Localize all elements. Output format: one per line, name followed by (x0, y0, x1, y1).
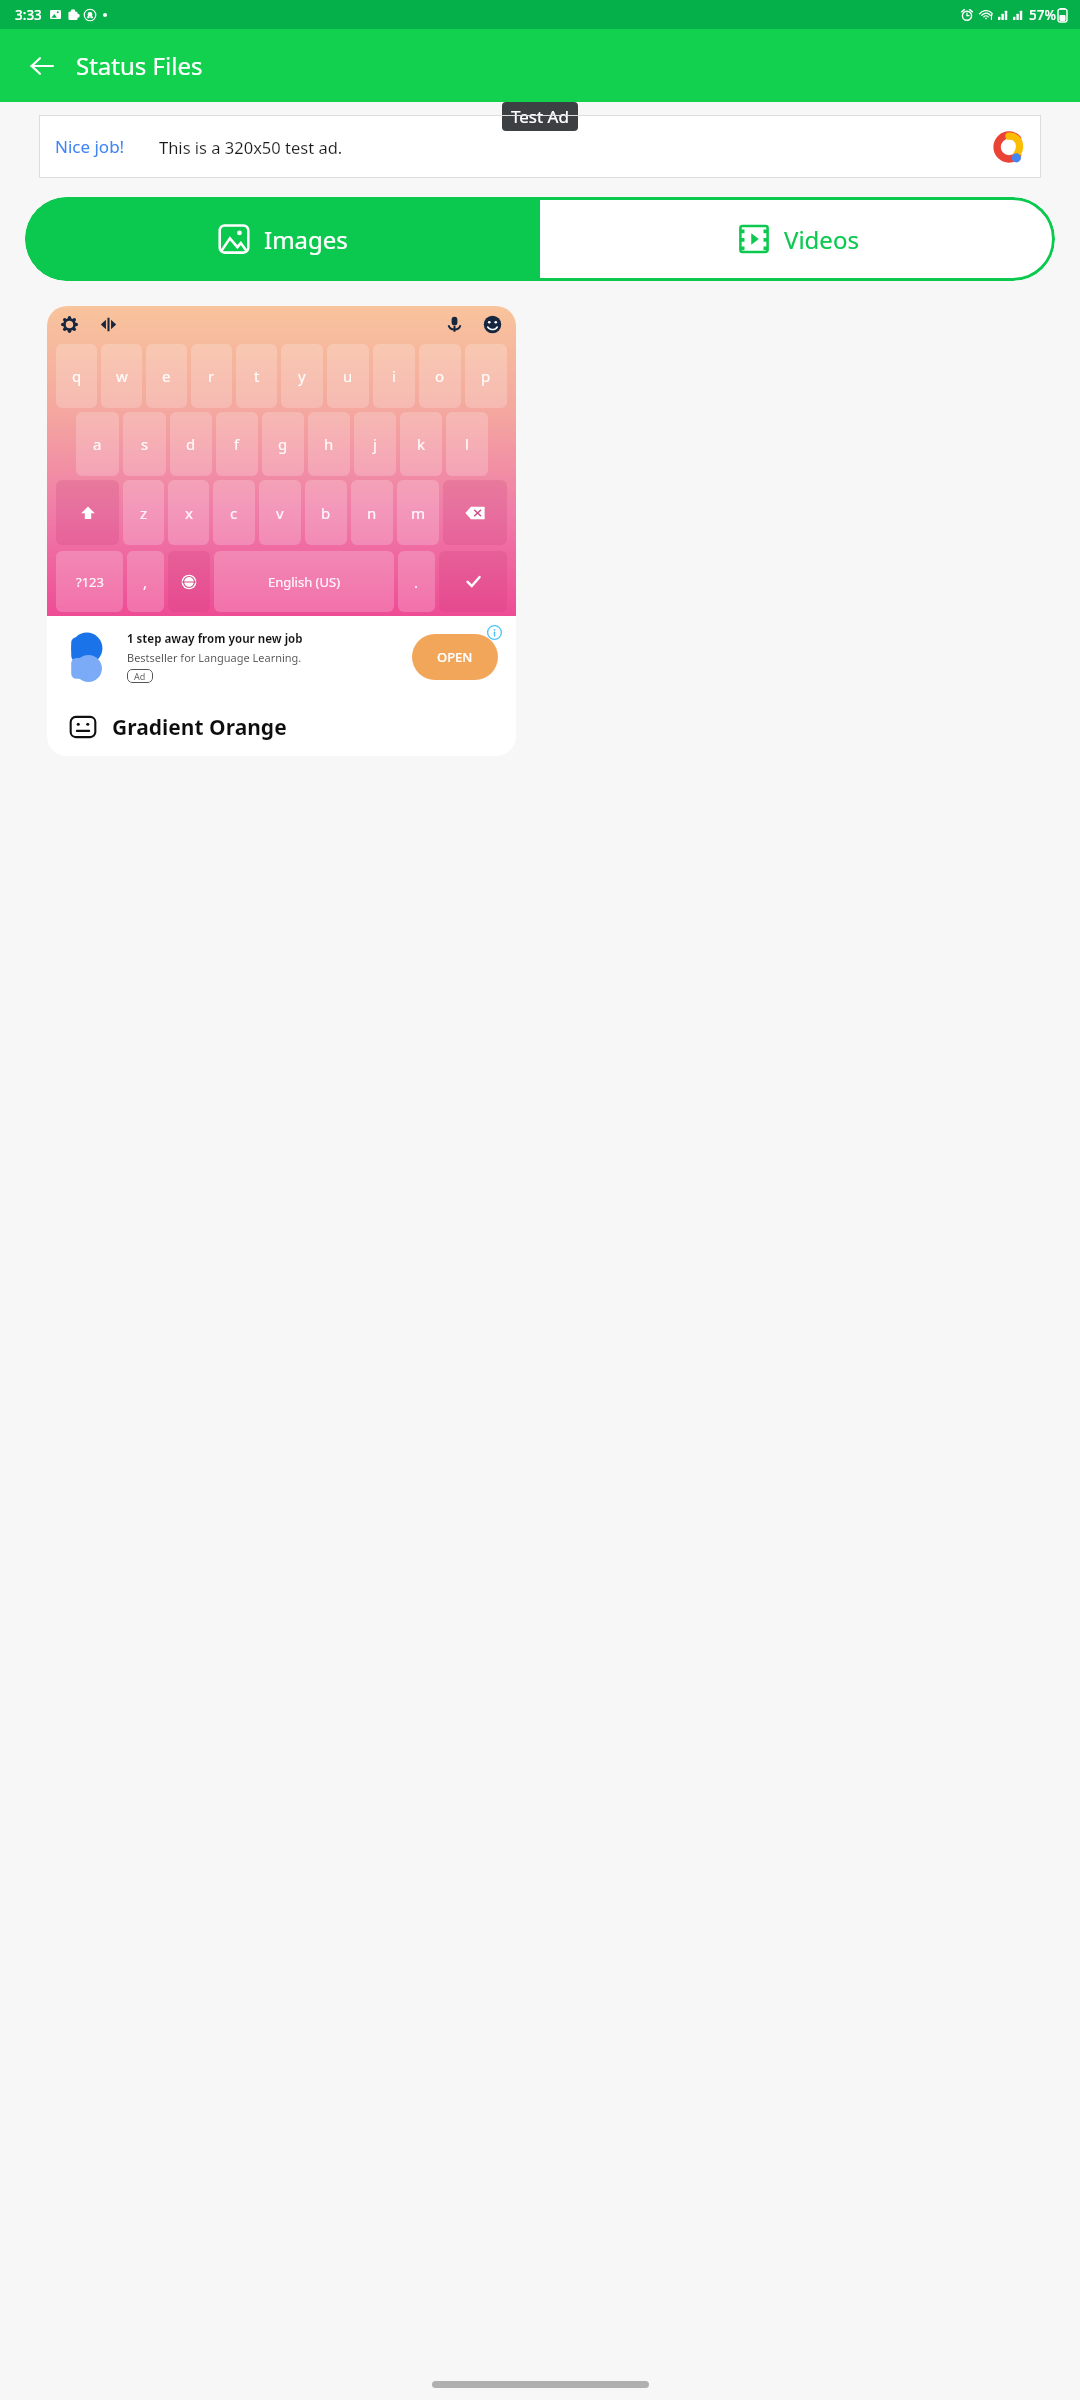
staticText: t (254, 366, 260, 386)
staticText: j (373, 434, 377, 454)
staticText: Videos (784, 223, 859, 256)
staticText: Bestseller for Language Learning. (127, 650, 302, 665)
staticText: s (141, 434, 149, 454)
staticText: g (278, 434, 288, 454)
staticText: English (US) (268, 573, 341, 591)
staticText: 57% (1029, 6, 1056, 24)
staticText: . (414, 572, 419, 592)
button[interactable]: Images (25, 197, 540, 281)
staticText: 3:33 (15, 6, 42, 24)
staticText: p (481, 366, 491, 386)
staticText: n (367, 503, 377, 523)
staticText: w (116, 366, 128, 386)
button[interactable]: q (47, 306, 516, 756)
staticText: o (435, 366, 445, 386)
staticText: l (465, 434, 469, 454)
staticText: Status Files (76, 49, 203, 82)
staticText: a (93, 434, 102, 454)
button[interactable]: OPEN (412, 634, 498, 680)
staticText: b (321, 503, 331, 523)
staticText: c (230, 503, 238, 523)
staticText: , (143, 572, 148, 592)
staticText: m (411, 503, 426, 523)
staticText: v (276, 503, 284, 523)
button[interactable]: 1 step away from your new job (55, 622, 508, 692)
staticText: Nice job! (55, 135, 125, 158)
staticText: d (186, 434, 196, 454)
staticText: z (140, 503, 148, 523)
staticText: h (324, 434, 334, 454)
staticText: k (417, 434, 426, 454)
staticText: i (392, 366, 396, 386)
staticText: Ad (134, 670, 146, 682)
button[interactable]: Nice job! (39, 115, 1041, 178)
staticText: x (185, 503, 193, 523)
staticText: Test Ad (511, 105, 569, 128)
button[interactable]: Back (18, 42, 66, 90)
staticText: Images (264, 223, 348, 256)
staticText: Gradient Orange (112, 713, 287, 742)
staticText: u (343, 366, 353, 386)
staticText: e (162, 366, 171, 386)
staticText: q (72, 366, 82, 386)
staticText: OPEN (437, 648, 473, 666)
staticText: This is a 320x50 test ad. (159, 136, 343, 158)
staticText: f (234, 434, 240, 454)
staticText: y (298, 366, 306, 386)
staticText: 1 step away from your new job (127, 631, 303, 647)
button[interactable]: Videos (540, 197, 1055, 281)
staticText: r (208, 366, 215, 386)
staticText: ?123 (76, 573, 104, 591)
